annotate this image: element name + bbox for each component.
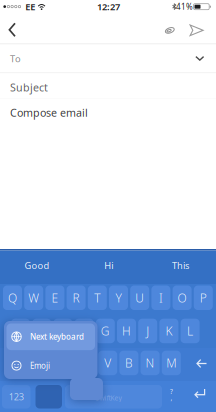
staticText: Z <box>41 355 48 371</box>
button[interactable]: H <box>117 319 136 343</box>
button[interactable]: N <box>141 351 160 375</box>
staticText: L <box>187 323 193 339</box>
staticText: Good <box>24 259 49 271</box>
button[interactable]: A <box>11 319 30 343</box>
button[interactable]: Punctuation <box>160 385 182 408</box>
staticText: R <box>73 290 80 306</box>
staticText: I <box>159 290 163 306</box>
button[interactable]: G <box>96 319 115 343</box>
staticText: P <box>200 290 207 306</box>
staticText: B <box>125 355 133 371</box>
button[interactable]: P <box>194 285 213 310</box>
button[interactable]: K <box>159 319 178 343</box>
button[interactable]: J <box>138 319 157 343</box>
staticText: T <box>94 290 100 306</box>
button[interactable]: L <box>181 319 200 343</box>
staticText: » SwiftKey <box>90 393 121 402</box>
staticText: Subject <box>10 80 48 94</box>
staticText: EE <box>25 0 35 13</box>
staticText: Hi <box>104 259 113 271</box>
button[interactable]: F <box>75 319 94 343</box>
button[interactable]: Subject <box>0 73 216 98</box>
button[interactable]: S <box>32 319 51 343</box>
staticText: K <box>165 323 172 339</box>
button[interactable]: Z <box>35 351 54 375</box>
staticText: W <box>28 290 39 306</box>
button[interactable]: Back <box>2 16 24 44</box>
staticText: 12:27 <box>97 0 120 13</box>
button[interactable]: M <box>162 351 181 375</box>
button[interactable]: O <box>173 285 192 310</box>
staticText: E <box>51 290 58 306</box>
button[interactable]: Next keyboard <box>6 323 95 350</box>
button[interactable]: T <box>88 285 107 310</box>
button[interactable]: This <box>145 249 216 282</box>
button[interactable]: E <box>45 285 64 310</box>
button[interactable]: Good <box>1 249 73 282</box>
staticText: Emoji <box>30 360 50 371</box>
button[interactable]: Attach file <box>160 18 180 42</box>
staticText: F <box>81 323 87 339</box>
staticText: U <box>135 290 144 306</box>
button[interactable]: Q <box>3 285 22 310</box>
staticText: D <box>58 323 67 339</box>
staticText: M <box>166 355 176 371</box>
staticText: 123 <box>9 391 24 403</box>
button[interactable]: R <box>67 285 86 310</box>
staticText: ? <box>170 387 173 396</box>
staticText: N <box>146 355 155 371</box>
button[interactable]: V <box>98 351 117 375</box>
staticText: G <box>101 323 110 339</box>
button[interactable]: 123 <box>2 385 30 408</box>
staticText: Y <box>115 290 121 306</box>
staticText: O <box>178 290 187 306</box>
staticText: J <box>146 323 149 339</box>
staticText: S <box>38 323 45 339</box>
button[interactable]: Compose email <box>0 98 216 128</box>
staticText: Q <box>8 290 17 306</box>
button[interactable]: B <box>119 351 138 375</box>
button[interactable]: W <box>24 285 43 310</box>
staticText: H <box>122 323 131 339</box>
button[interactable]: Y <box>109 285 128 310</box>
button[interactable]: Emoji <box>6 353 95 378</box>
button[interactable]: Next keyboard <box>35 385 62 408</box>
button[interactable]: Hi <box>73 249 145 282</box>
staticText: To <box>10 52 21 65</box>
button[interactable]: Return <box>186 385 213 408</box>
staticText: , <box>170 393 172 402</box>
button[interactable]: I <box>151 285 170 310</box>
staticText: This <box>172 259 189 271</box>
button[interactable]: Delete <box>187 351 213 375</box>
button[interactable]: To <box>0 44 216 73</box>
staticText: Next keyboard <box>30 331 84 342</box>
button[interactable]: Send <box>187 19 207 42</box>
staticText: 41% <box>176 1 193 12</box>
button[interactable]: Space <box>65 385 162 408</box>
staticText: A <box>17 323 24 339</box>
button[interactable]: D <box>53 319 72 343</box>
staticText: V <box>104 355 111 371</box>
staticText: Compose email <box>10 105 88 120</box>
button[interactable]: U <box>130 285 149 310</box>
